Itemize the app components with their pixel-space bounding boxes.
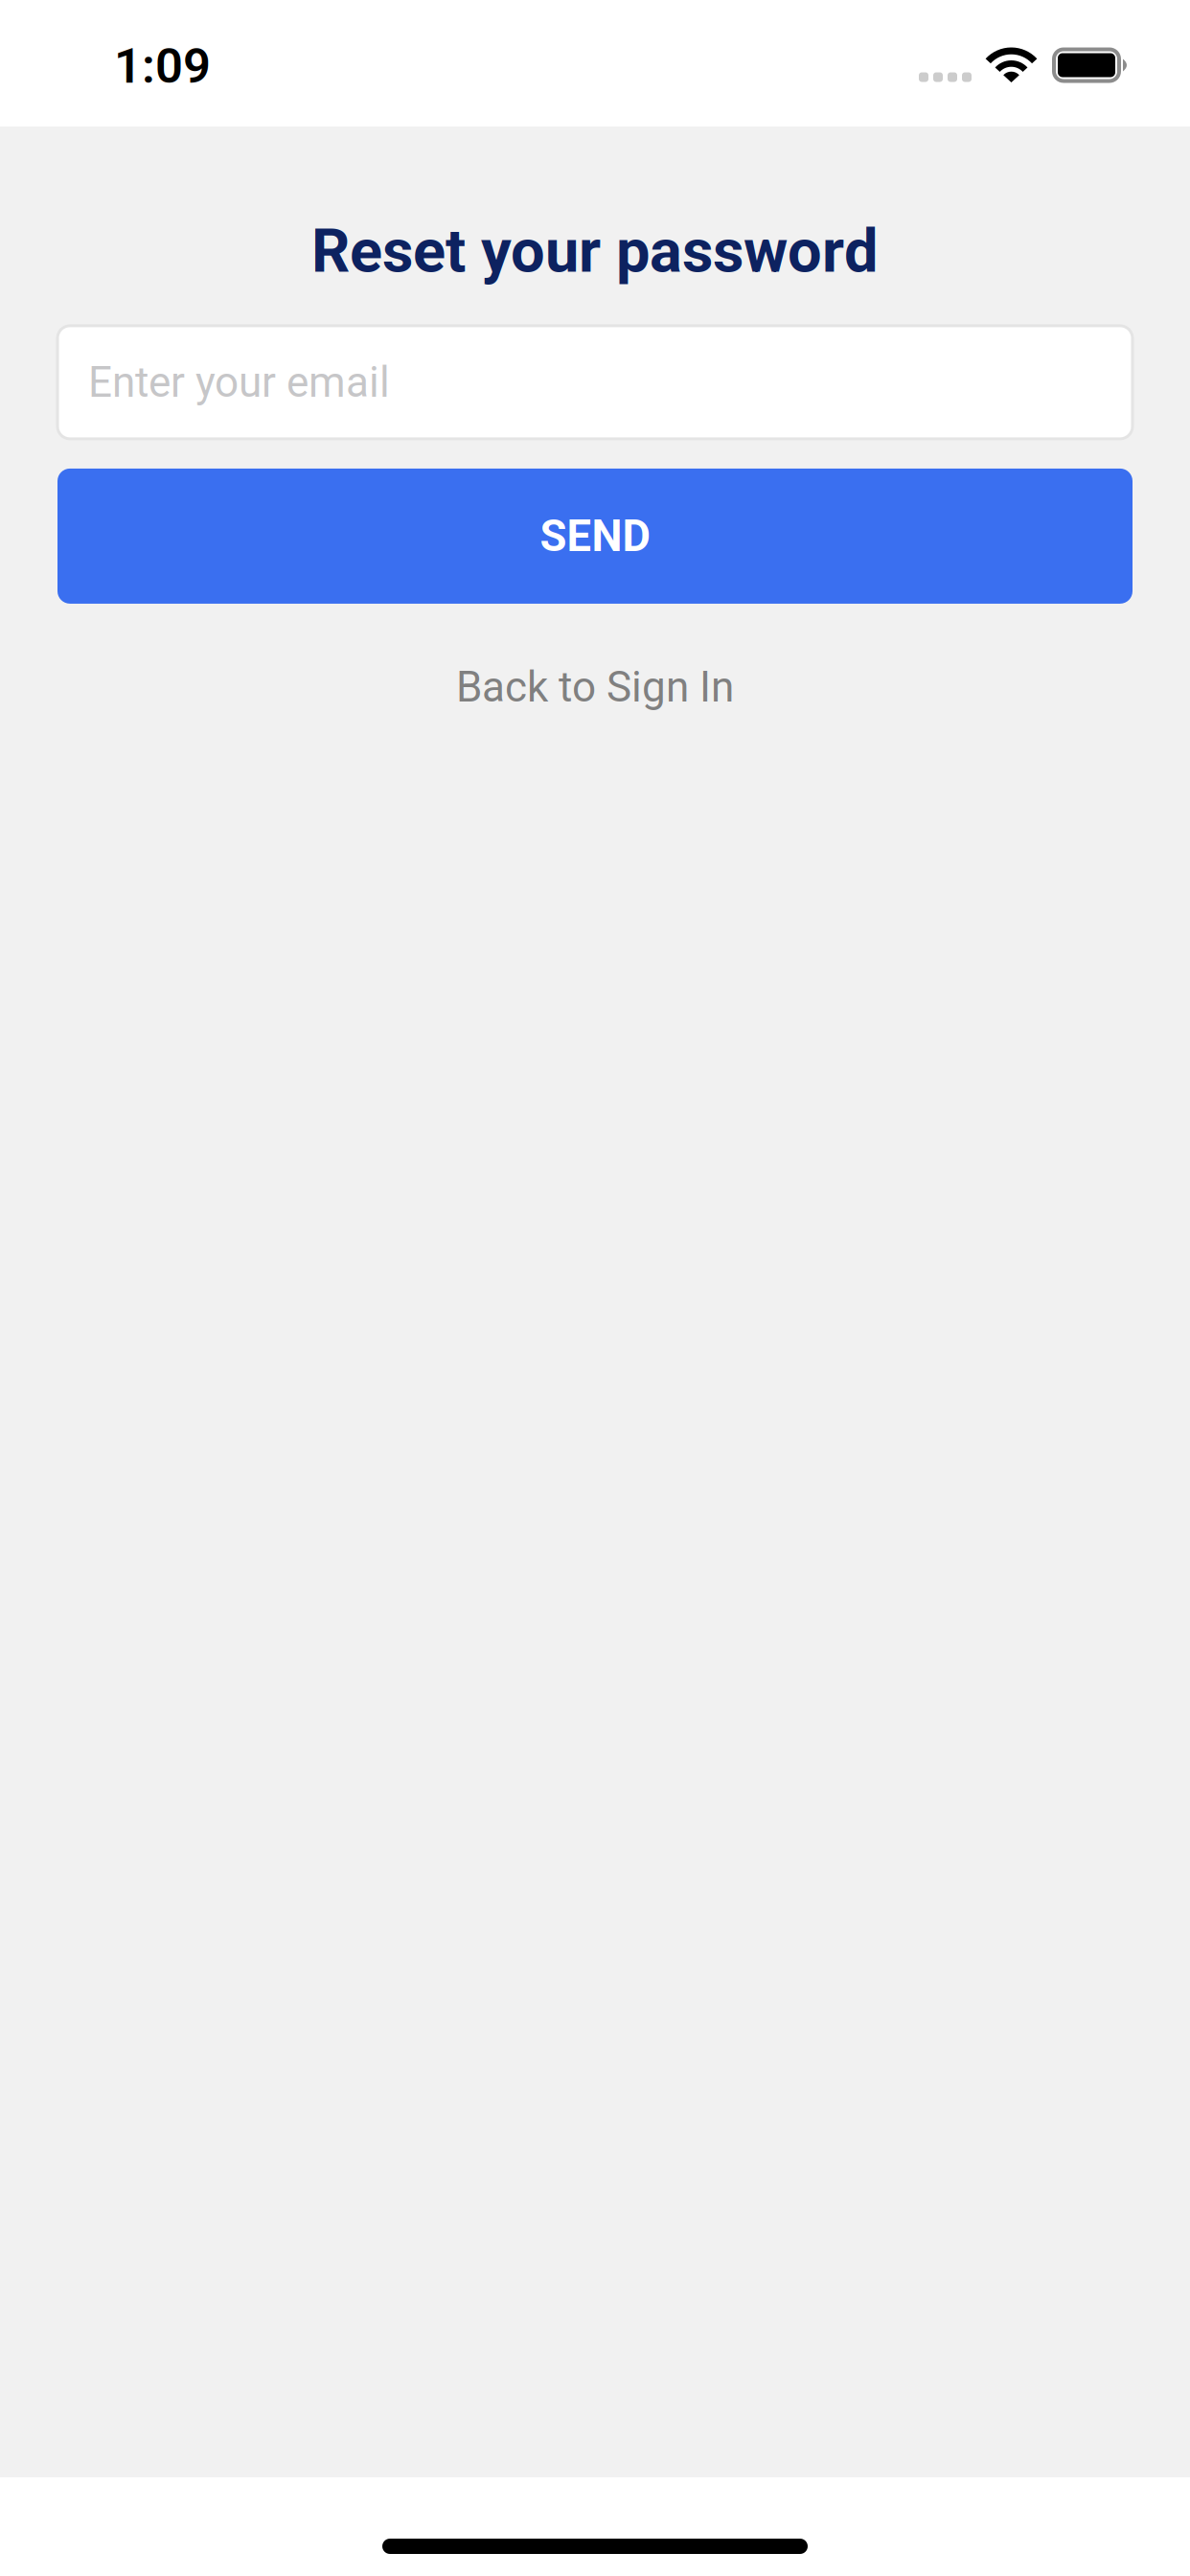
button[interactable]: Back to Sign In <box>57 641 1133 733</box>
staticText: Enter your email <box>88 358 390 407</box>
button[interactable]: Email <box>57 326 1133 439</box>
staticText: 1:09 <box>114 38 211 95</box>
staticText: Back to Sign In <box>456 662 734 712</box>
staticText: Reset your password <box>311 216 879 286</box>
staticText: SEND <box>540 511 650 561</box>
button[interactable]: SEND <box>57 469 1133 604</box>
